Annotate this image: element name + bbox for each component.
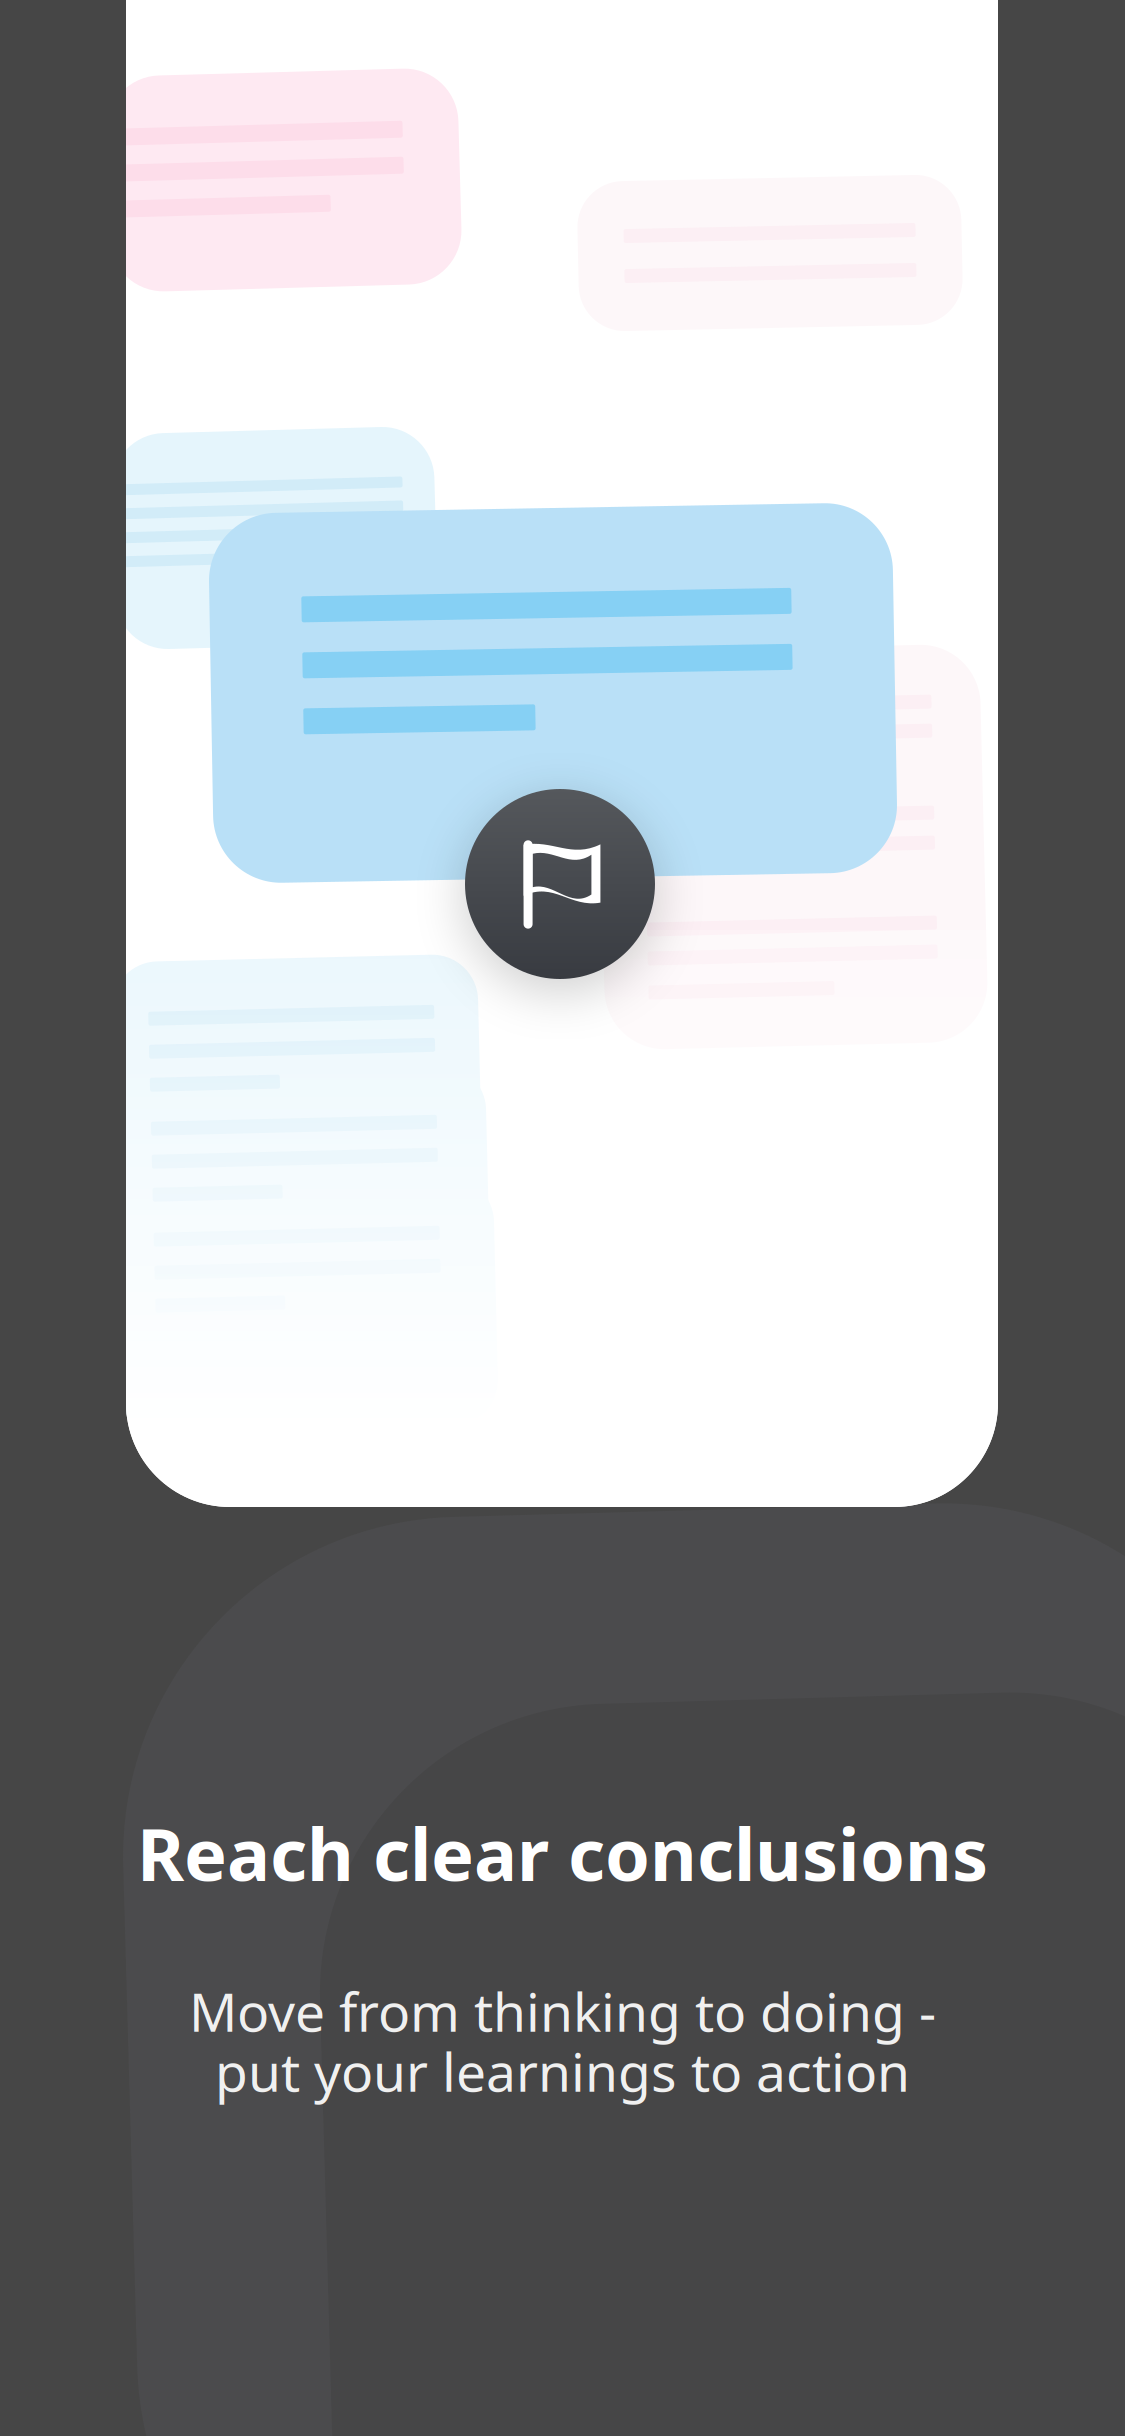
staticText: put your learnings to action <box>215 2036 910 2106</box>
button[interactable]: Flag <box>465 789 655 979</box>
staticText: Reach clear conclusions <box>137 1805 988 1901</box>
staticText: Move from thinking to doing - <box>189 1976 936 2046</box>
